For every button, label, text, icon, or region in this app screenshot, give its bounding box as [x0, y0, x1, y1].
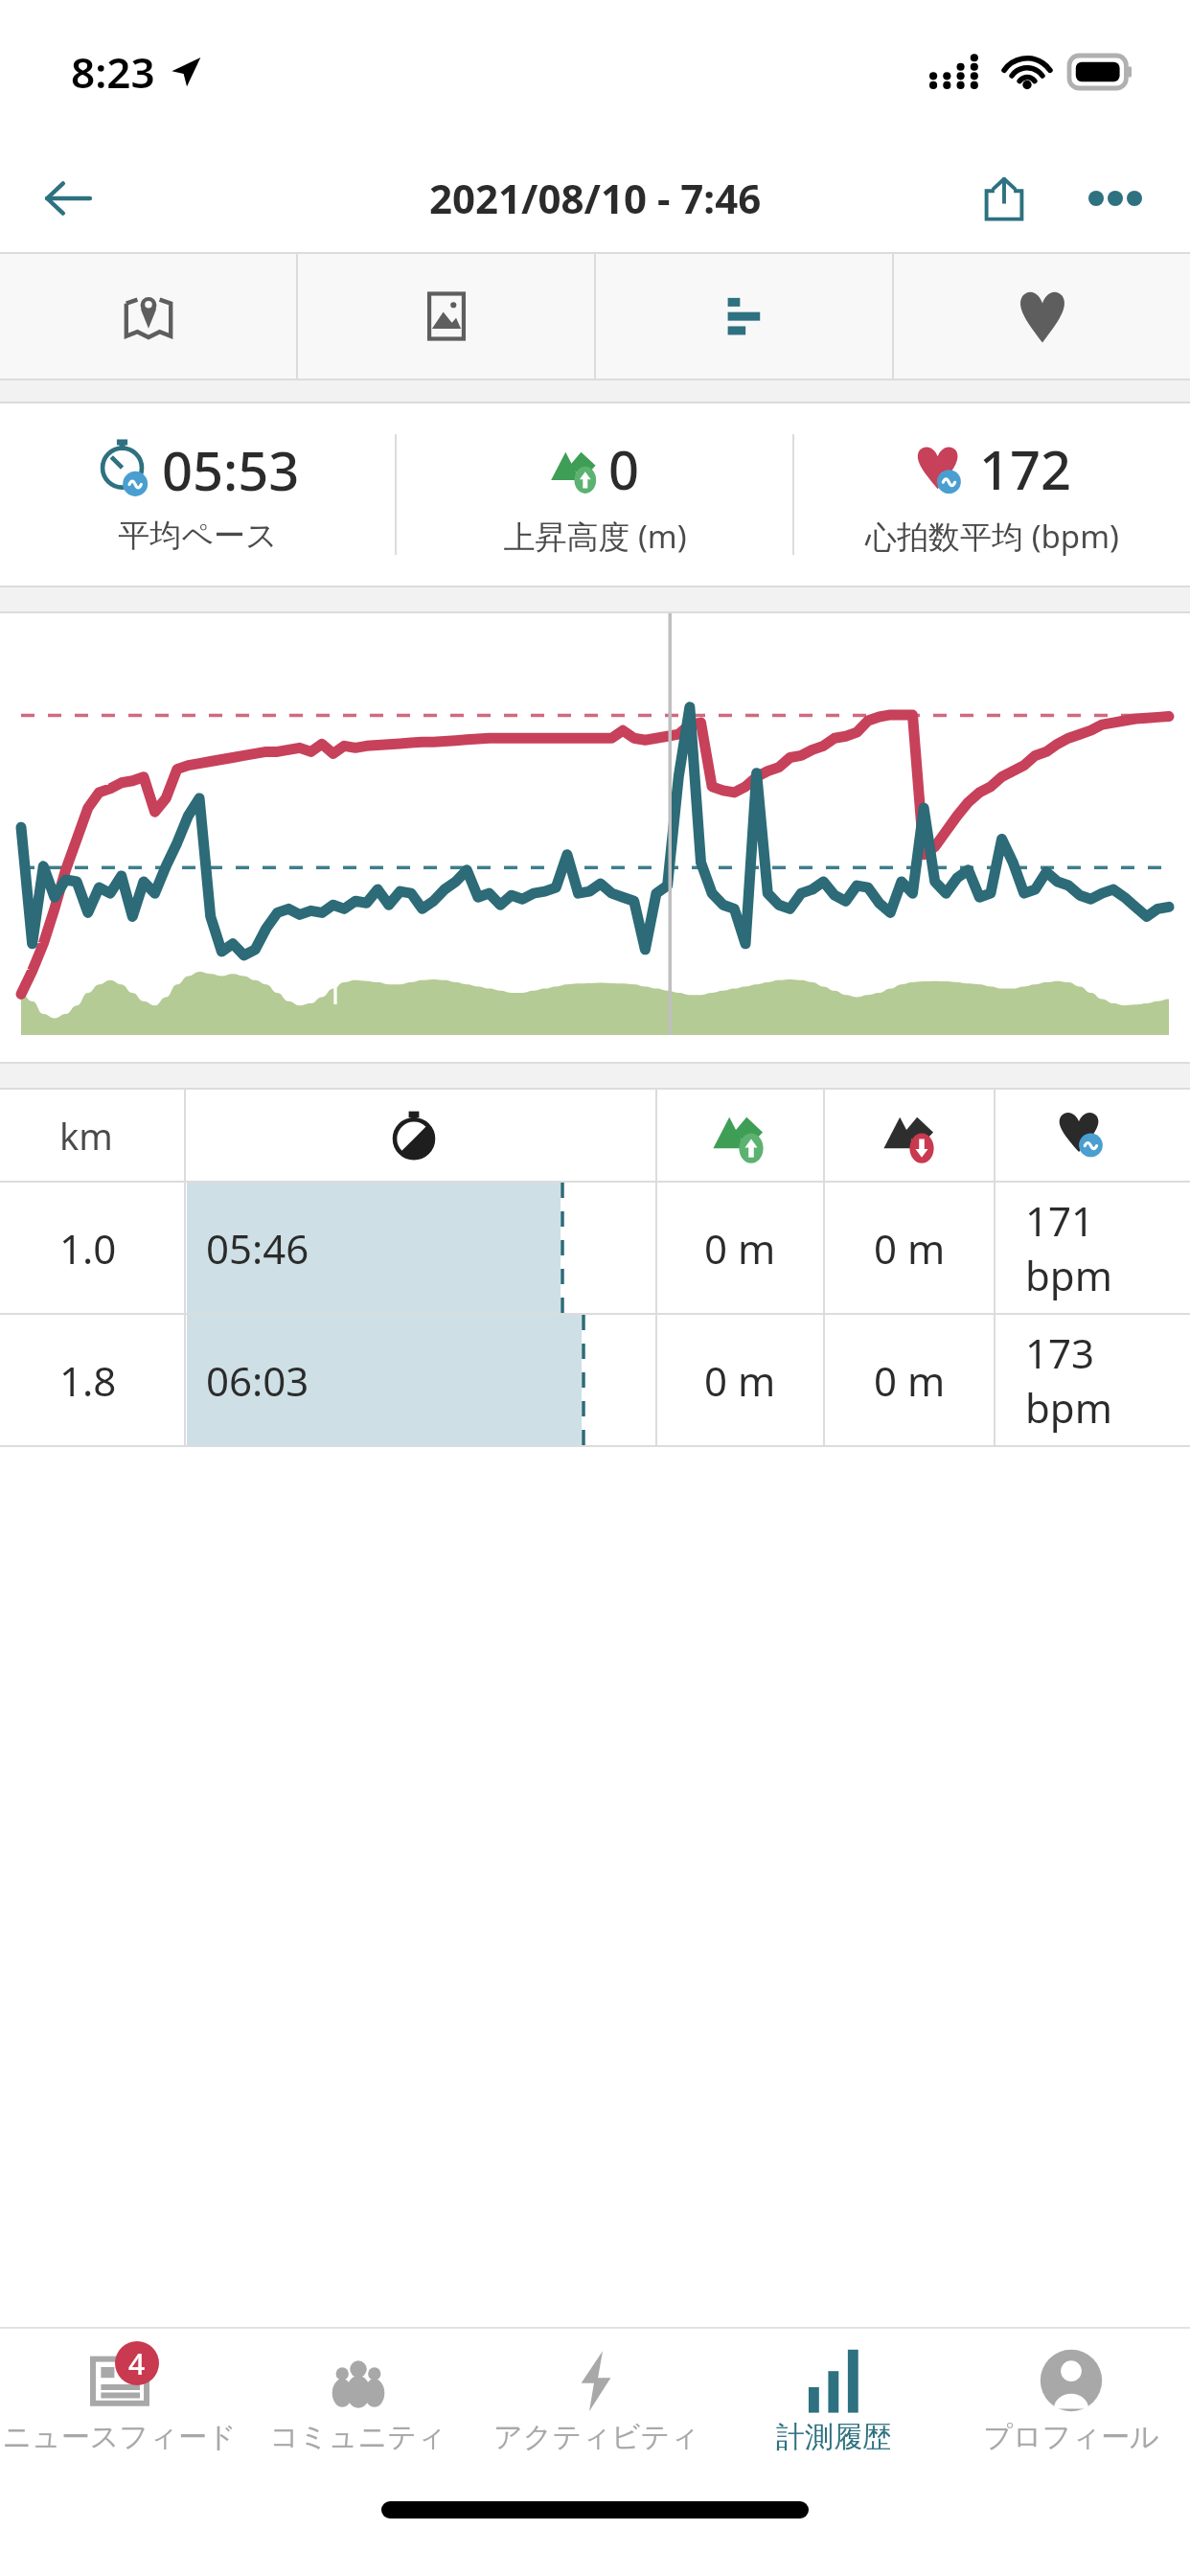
button[interactable]: Back: [27, 158, 107, 239]
staticText: 1: [326, 972, 344, 1014]
staticText: 2021/08/10 - 7:46: [429, 171, 762, 225]
button[interactable]: 1.8: [0, 1315, 1190, 1445]
staticText: 計測履歴: [776, 2419, 891, 2455]
staticText: コミュニティ: [269, 2419, 446, 2455]
button[interactable]: 4: [0, 2329, 239, 2472]
staticText: アクティビティ: [493, 2419, 699, 2455]
button[interactable]: アクティビティ: [477, 2329, 715, 2472]
staticText: 0 m: [874, 1221, 946, 1276]
button[interactable]: 172: [794, 403, 1190, 586]
staticText: 0 m: [874, 1353, 946, 1408]
staticText: 上昇高度 (m): [503, 515, 687, 558]
button[interactable]: 05:53: [0, 403, 395, 586]
staticText: 05:46: [206, 1221, 309, 1276]
staticText: 1.8: [59, 1353, 117, 1408]
staticText: 0 m: [704, 1353, 776, 1408]
staticText: 171 bpm: [1025, 1193, 1190, 1302]
button[interactable]: Heart rate: [894, 254, 1190, 379]
staticText: 1.0: [59, 1221, 117, 1276]
staticText: 4: [128, 2344, 146, 2383]
button[interactable]: Share: [958, 152, 1050, 244]
staticText: 0: [608, 432, 640, 505]
staticText: 06:03: [206, 1353, 309, 1408]
button[interactable]: More options: [1069, 152, 1161, 244]
staticText: 0 m: [704, 1221, 776, 1276]
staticText: プロフィール: [983, 2419, 1159, 2455]
button[interactable]: Map: [0, 254, 296, 379]
staticText: 平均ペース: [118, 516, 278, 556]
button[interactable]: Photos: [298, 254, 594, 379]
button[interactable]: コミュニティ: [239, 2329, 477, 2472]
button[interactable]: 計測履歴: [715, 2329, 952, 2472]
staticText: 172: [979, 432, 1072, 505]
button[interactable]: Graph: [596, 254, 892, 379]
staticText: 8:23: [71, 43, 155, 101]
staticText: ニュースフィード: [2, 2419, 237, 2455]
staticText: km: [59, 1111, 113, 1161]
button[interactable]: 0: [397, 403, 792, 586]
button[interactable]: 1.0: [0, 1183, 1190, 1313]
staticText: 173 bpm: [1025, 1325, 1190, 1435]
staticText: 05:53: [162, 433, 300, 506]
button[interactable]: プロフィール: [952, 2329, 1190, 2472]
staticText: 心拍数平均 (bpm): [865, 515, 1119, 558]
